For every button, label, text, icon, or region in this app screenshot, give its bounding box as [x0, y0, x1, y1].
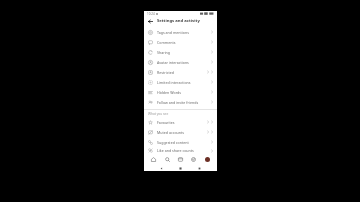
staticText: Sharing: [157, 50, 171, 55]
button[interactable]: Tags and mentions: [144, 27, 217, 37]
button[interactable]: Search: [164, 156, 171, 163]
staticText: Hidden Words: [157, 90, 181, 95]
button[interactable]: Reels: [177, 156, 184, 163]
staticText: Favourites: [157, 120, 175, 125]
button[interactable]: Limited interactions: [144, 77, 217, 87]
staticText: Restricted: [157, 70, 174, 75]
staticText: Muted accounts: [157, 130, 185, 135]
button[interactable]: Home: [150, 156, 157, 163]
staticText: Limited interactions: [157, 80, 191, 85]
button[interactable]: Restricted: [144, 67, 217, 77]
staticText: Follow and invite friends: [157, 100, 199, 105]
button[interactable]: Favourites: [144, 117, 217, 127]
staticText: 10:24: [147, 12, 155, 16]
button[interactable]: Suggested content: [144, 137, 217, 147]
button[interactable]: Follow and invite friends: [144, 97, 217, 107]
button[interactable]: Like and share counts: [144, 147, 217, 154]
staticText: Settings and activity: [157, 18, 200, 24]
staticText: Like and share counts: [157, 148, 194, 153]
staticText: Tags and mentions: [157, 30, 189, 35]
button[interactable]: Hidden Words: [144, 87, 217, 97]
staticText: Suggested content: [157, 140, 189, 145]
button[interactable]: Sharing: [144, 47, 217, 57]
staticText: What you see: [148, 112, 169, 116]
staticText: Avatar interactions: [157, 60, 189, 65]
button[interactable]: Comments: [144, 37, 217, 47]
button[interactable]: Muted accounts: [144, 127, 217, 137]
button[interactable]: Profile: [204, 156, 211, 163]
button[interactable]: Back: [147, 18, 154, 25]
staticText: Comments: [157, 40, 176, 45]
button[interactable]: Messages: [190, 156, 197, 163]
button[interactable]: Avatar interactions: [144, 57, 217, 67]
